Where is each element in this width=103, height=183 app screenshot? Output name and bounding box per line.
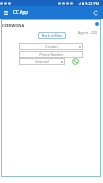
button[interactable]: Contact — [19, 43, 83, 50]
button[interactable]: Call — [71, 57, 79, 65]
staticText: Agent : 220 — [78, 30, 98, 35]
button[interactable]: Open navigation menu — [2, 9, 10, 17]
staticText: Phone Number — [39, 52, 64, 57]
button[interactable]: Back to Main — [38, 32, 66, 39]
staticText: CC App — [13, 9, 28, 15]
button[interactable]: External — [19, 58, 65, 65]
staticText: Back to Main — [42, 33, 63, 38]
staticText: Contact — [45, 44, 58, 49]
staticText: CZERWONA — [2, 23, 25, 28]
button[interactable]: Refresh — [92, 9, 100, 17]
button[interactable]: Sync — [93, 20, 100, 27]
staticText: External — [35, 59, 49, 64]
staticText: 9:22 PM — [85, 1, 100, 6]
button[interactable]: Phone Number — [19, 51, 83, 58]
